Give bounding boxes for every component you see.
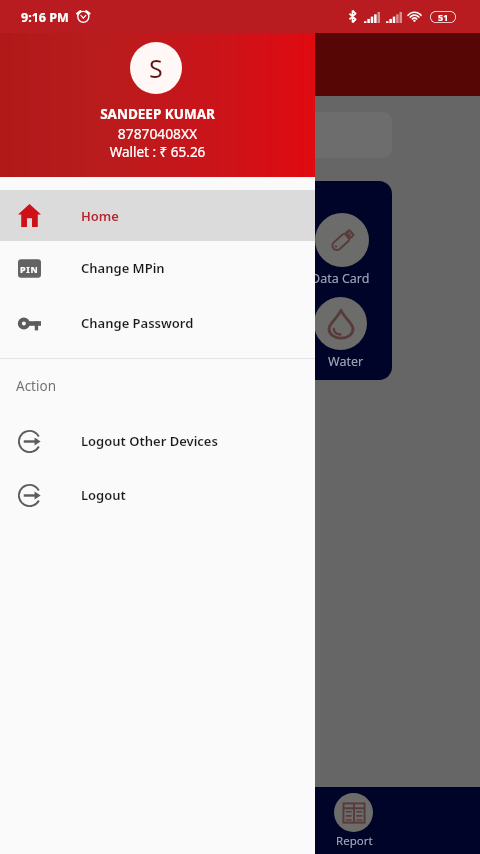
staticText: 9:16 PM <box>21 9 69 26</box>
button[interactable]: Logout <box>0 468 315 522</box>
staticText: Logout Other Devices <box>81 432 218 450</box>
staticText: 87870408XX <box>0 124 315 143</box>
button[interactable]: Report <box>334 793 373 832</box>
staticText: Water <box>328 353 364 370</box>
staticText: Report <box>336 833 373 849</box>
button[interactable]: Data Card <box>315 213 369 267</box>
staticText: S <box>149 51 163 85</box>
staticText: Data Card <box>311 270 370 287</box>
staticText: SANDEEP KUMAR <box>0 105 315 123</box>
button[interactable]: Water <box>314 297 367 350</box>
staticText: 51 <box>438 11 449 23</box>
button[interactable]: PIN <box>0 241 315 295</box>
staticText: Change MPin <box>81 259 165 277</box>
staticText: Logout <box>81 486 126 504</box>
button[interactable]: Change Password <box>0 296 315 350</box>
staticText: PIN <box>20 263 39 275</box>
staticText: Action <box>16 377 56 395</box>
staticText: Home <box>81 207 119 225</box>
staticText: Wallet : ₹ 65.26 <box>0 143 315 161</box>
button[interactable]: Logout Other Devices <box>0 414 315 468</box>
button[interactable]: Home <box>0 190 315 241</box>
staticText: Change Password <box>81 314 194 332</box>
